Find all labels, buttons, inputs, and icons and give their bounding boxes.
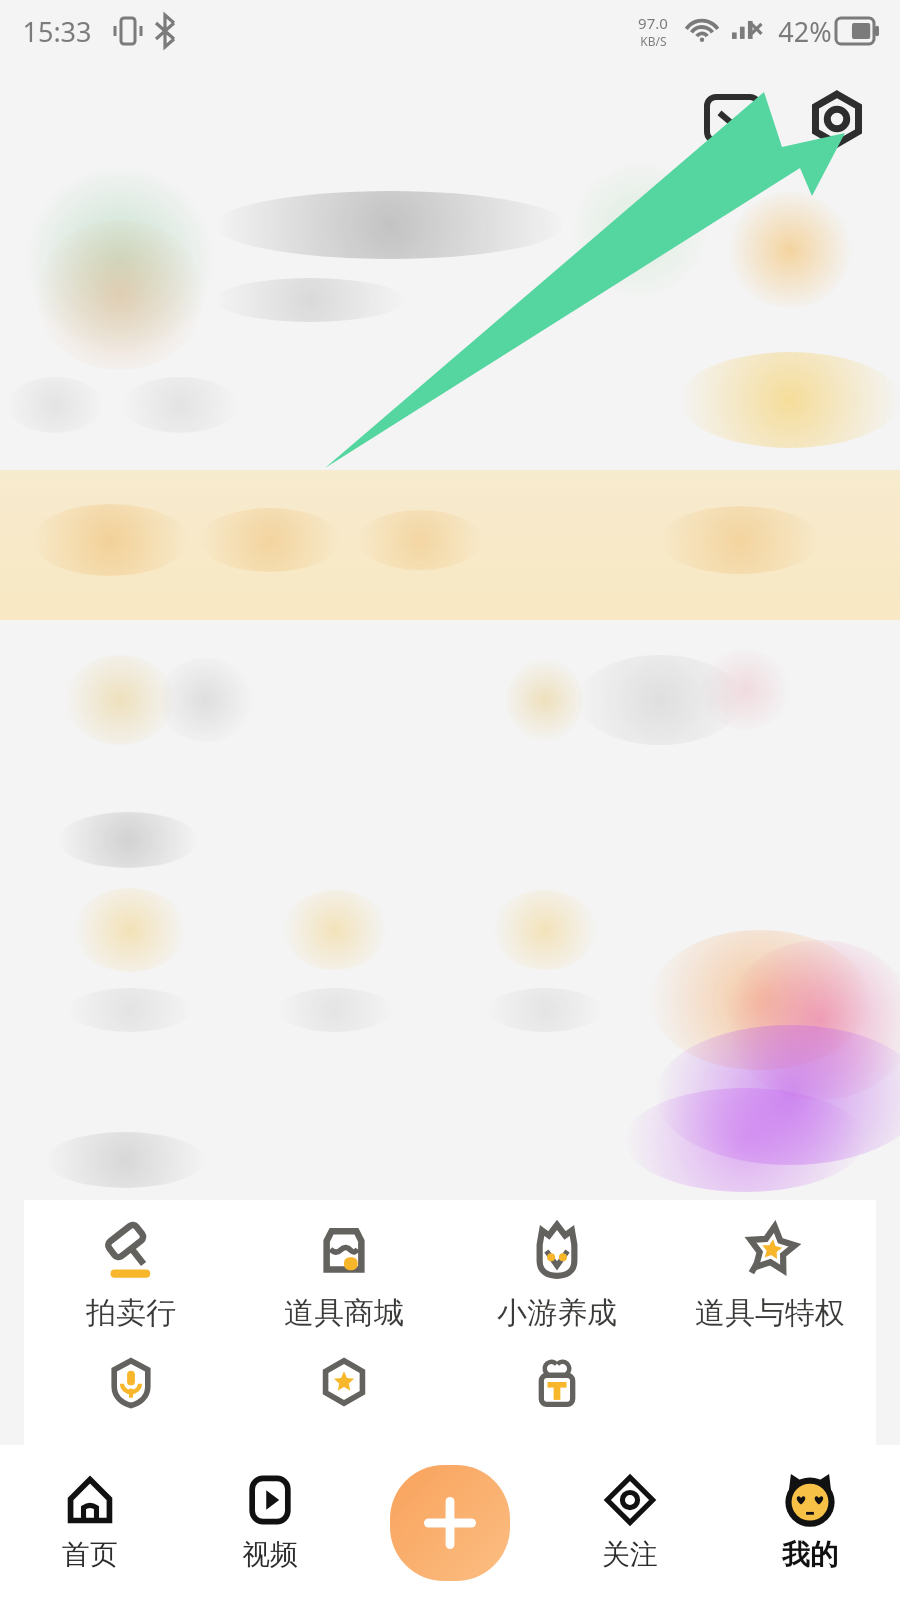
button[interactable]: 我的 bbox=[720, 1445, 900, 1600]
staticText: 首页 bbox=[62, 1537, 118, 1572]
button[interactable]: 关注 bbox=[540, 1445, 720, 1600]
staticText: 我的 bbox=[782, 1537, 838, 1572]
button[interactable]: 拍卖行 bbox=[24, 1216, 237, 1336]
staticText: 小游养成 bbox=[497, 1294, 617, 1332]
staticText: 视频 bbox=[242, 1537, 298, 1572]
staticText: 15:33 bbox=[22, 13, 92, 50]
button[interactable]: 小游养成 bbox=[450, 1216, 663, 1336]
button[interactable]: Settings bbox=[800, 82, 874, 156]
staticText: 道具商城 bbox=[284, 1294, 404, 1332]
button[interactable]: 首页 bbox=[0, 1445, 180, 1600]
button[interactable]: 视频 bbox=[180, 1445, 360, 1600]
button[interactable]: 道具与特权 bbox=[663, 1216, 876, 1336]
staticText: 拍卖行 bbox=[86, 1294, 176, 1332]
button[interactable]: Gift bbox=[450, 1354, 663, 1410]
button[interactable]: 道具商城 bbox=[237, 1216, 450, 1336]
staticText: 道具与特权 bbox=[695, 1294, 845, 1332]
staticText: KB/S bbox=[640, 33, 667, 49]
staticText: 关注 bbox=[602, 1537, 658, 1572]
button[interactable]: Level bbox=[237, 1354, 450, 1410]
button[interactable]: Messages bbox=[696, 82, 770, 156]
button[interactable]: Voice bbox=[24, 1354, 237, 1410]
staticText: 97.0 bbox=[638, 13, 668, 33]
staticText: 42% bbox=[778, 13, 832, 50]
button[interactable]: Create bbox=[390, 1465, 510, 1581]
